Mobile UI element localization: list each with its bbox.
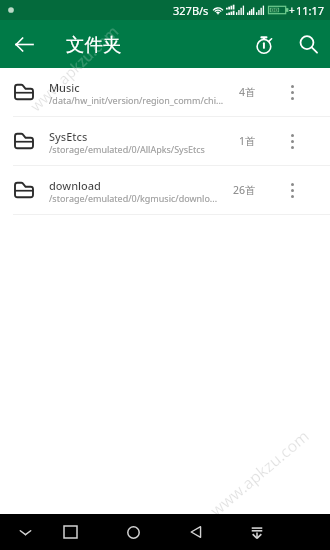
staticText: /storage/emulated/0/AllApks/SysEtcs bbox=[49, 143, 205, 155]
staticText: SysEtcs bbox=[49, 129, 88, 144]
staticText: www.apkzu.com bbox=[205, 425, 314, 521]
staticText: /storage/emulated/0/kgmusic/downlo... bbox=[49, 192, 218, 204]
button[interactable]: Recents bbox=[49, 514, 91, 550]
staticText: Music bbox=[49, 80, 80, 95]
staticText: 4首 bbox=[239, 85, 256, 99]
button[interactable]: Back bbox=[0, 20, 48, 68]
staticText: 327B/s bbox=[173, 3, 209, 18]
button[interactable]: More options bbox=[274, 166, 311, 214]
staticText: 文件夹 bbox=[66, 33, 122, 56]
staticText: 11:17 bbox=[296, 3, 325, 18]
button[interactable]: Switch bbox=[236, 514, 278, 550]
button[interactable]: Timer bbox=[242, 20, 286, 68]
button[interactable]: Search bbox=[286, 20, 330, 68]
staticText: 1首 bbox=[239, 134, 256, 148]
button[interactable]: Hide keyboard bbox=[4, 514, 46, 550]
staticText: + bbox=[289, 3, 295, 17]
staticText: 26首 bbox=[233, 183, 256, 197]
button[interactable]: More options bbox=[274, 117, 311, 165]
button[interactable]: SysEtcs bbox=[0, 117, 330, 165]
staticText: download bbox=[49, 178, 101, 193]
button[interactable]: Back bbox=[175, 514, 217, 550]
staticText: www.apkzu.com bbox=[25, 68, 123, 115]
staticText: /data/hw_init/version/region_comm/chi... bbox=[49, 94, 224, 106]
button[interactable]: Home bbox=[112, 514, 154, 550]
staticText: www.apkzu.com bbox=[25, 20, 123, 68]
button[interactable]: More options bbox=[274, 68, 311, 116]
button[interactable]: download bbox=[0, 166, 330, 214]
button[interactable]: Music bbox=[0, 68, 330, 116]
